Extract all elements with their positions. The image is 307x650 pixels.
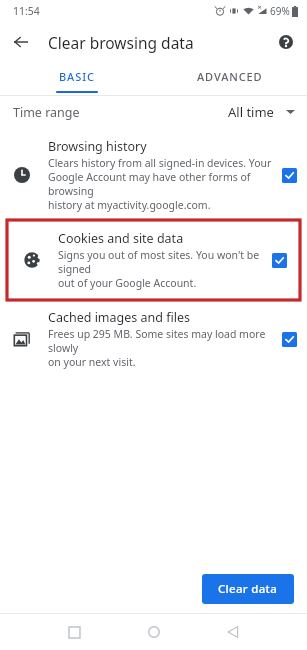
staticText: Cookies and site data [58,230,184,247]
staticText: Signs you out of most sites. You won't b… [58,248,264,290]
staticText: Cached images and files [48,309,190,326]
button[interactable]: BASIC [0,62,153,95]
staticText: Time range [13,104,80,121]
staticText: 11:54 [13,4,40,18]
button[interactable]: Checked [282,168,297,183]
button[interactable]: Cookies and site data [7,220,300,300]
button[interactable]: Home [140,618,168,646]
staticText: All time [228,103,274,121]
button[interactable]: Clear data [202,574,294,604]
button[interactable]: Checked [272,253,287,268]
staticText: Clears history from all signed-in device… [48,156,274,212]
button[interactable]: Back [6,27,36,57]
button[interactable]: Help [272,28,300,56]
staticText: ADVANCED [197,69,263,84]
staticText: Browsing history [48,138,147,155]
button[interactable]: Checked [282,332,297,347]
staticText: Frees up 295 MB. Some sites may load mor… [48,327,274,369]
button[interactable]: Cached images and files [0,300,307,377]
staticText: 69% [270,4,290,18]
button[interactable]: Browsing history [0,128,307,220]
button[interactable]: Time range [0,96,307,128]
staticText: Clear browsing data [48,32,194,53]
button[interactable]: Back [219,618,247,646]
button[interactable]: Recent apps [60,618,88,646]
staticText: Clear data [218,581,278,597]
staticText: BASIC [59,69,95,84]
button[interactable]: ADVANCED [153,62,307,95]
